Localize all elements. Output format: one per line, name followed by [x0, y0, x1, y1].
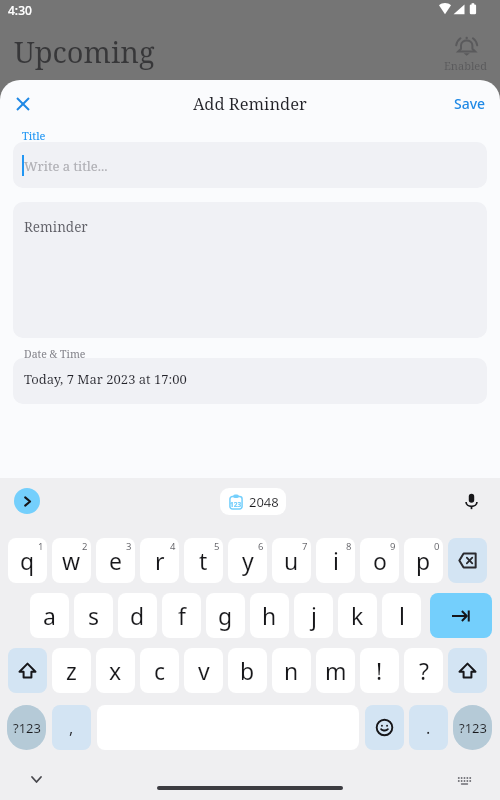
- button[interactable]: b: [228, 648, 267, 693]
- button[interactable]: Enter: [430, 593, 492, 638]
- staticText: i: [333, 545, 339, 576]
- staticText: h: [262, 600, 277, 631]
- button[interactable]: k: [338, 593, 377, 638]
- button[interactable]: Close: [5, 86, 41, 122]
- staticText: Add Reminder: [193, 92, 307, 114]
- staticText: p: [416, 545, 431, 576]
- button[interactable]: i: [316, 538, 355, 583]
- button[interactable]: p: [404, 538, 443, 583]
- button[interactable]: n: [272, 648, 311, 693]
- staticText: Reminder: [24, 218, 88, 236]
- staticText: Save: [454, 94, 486, 113]
- button[interactable]: Today, 7 Mar 2023 at 17:00: [13, 358, 487, 404]
- staticText: ,: [69, 717, 74, 739]
- button[interactable]: l: [382, 593, 421, 638]
- button[interactable]: a: [30, 593, 69, 638]
- staticText: 2: [82, 540, 88, 553]
- button[interactable]: e: [96, 538, 135, 583]
- staticText: !: [376, 655, 383, 686]
- staticText: Upcoming: [14, 32, 155, 71]
- button[interactable]: o: [360, 538, 399, 583]
- button[interactable]: ?: [404, 648, 443, 693]
- button[interactable]: ?123: [453, 705, 492, 750]
- button[interactable]: q: [8, 538, 47, 583]
- button[interactable]: s: [74, 593, 113, 638]
- staticText: ?: [419, 655, 429, 686]
- staticText: 5: [214, 540, 220, 553]
- staticText: x: [109, 655, 122, 686]
- button[interactable]: Hide keyboard: [24, 767, 48, 791]
- button[interactable]: .: [409, 705, 448, 750]
- button[interactable]: Backspace: [448, 538, 487, 583]
- staticText: 4: [170, 540, 176, 553]
- staticText: 6: [258, 540, 264, 553]
- staticText: q: [20, 545, 35, 576]
- staticText: 8: [346, 540, 352, 553]
- staticText: Write a title...: [24, 157, 108, 175]
- staticText: z: [66, 655, 77, 686]
- staticText: c: [154, 655, 166, 686]
- staticText: 9: [390, 540, 396, 553]
- button[interactable]: Emoji: [365, 705, 404, 750]
- staticText: j: [311, 600, 317, 631]
- button[interactable]: Shift: [448, 648, 487, 693]
- button[interactable]: j: [294, 593, 333, 638]
- staticText: 1: [38, 540, 44, 553]
- button[interactable]: Write a title...: [13, 142, 487, 188]
- button[interactable]: Shift: [8, 648, 47, 693]
- staticText: Enabled: [444, 58, 487, 73]
- button[interactable]: ,: [52, 705, 91, 750]
- staticText: g: [218, 600, 233, 631]
- staticText: t: [199, 545, 208, 576]
- button[interactable]: 123: [220, 488, 286, 515]
- staticText: d: [130, 600, 145, 631]
- button[interactable]: g: [206, 593, 245, 638]
- button[interactable]: c: [140, 648, 179, 693]
- staticText: n: [284, 655, 299, 686]
- staticText: u: [284, 545, 299, 576]
- button[interactable]: v: [184, 648, 223, 693]
- button[interactable]: !: [360, 648, 399, 693]
- button[interactable]: w: [52, 538, 91, 583]
- staticText: b: [240, 655, 255, 686]
- button[interactable]: h: [250, 593, 289, 638]
- button[interactable]: r: [140, 538, 179, 583]
- staticText: .: [426, 717, 431, 739]
- staticText: 123: [230, 500, 242, 509]
- staticText: Title: [22, 128, 46, 143]
- button[interactable]: Voice input: [458, 488, 484, 514]
- staticText: w: [62, 545, 81, 576]
- staticText: f: [178, 600, 186, 631]
- staticText: 0: [434, 540, 440, 553]
- button[interactable]: Expand toolbar: [14, 488, 40, 514]
- button[interactable]: Reminder: [13, 202, 487, 338]
- staticText: 3: [126, 540, 132, 553]
- staticText: Today, 7 Mar 2023 at 17:00: [24, 370, 187, 388]
- staticText: m: [325, 655, 347, 686]
- staticText: 4:30: [8, 2, 32, 18]
- button[interactable]: ?123: [7, 705, 46, 750]
- button[interactable]: u: [272, 538, 311, 583]
- staticText: y: [242, 545, 254, 576]
- staticText: k: [351, 600, 364, 631]
- staticText: a: [43, 600, 56, 631]
- button[interactable]: Change keyboard: [452, 769, 476, 793]
- staticText: v: [198, 655, 210, 686]
- button[interactable]: z: [52, 648, 91, 693]
- staticText: r: [155, 545, 165, 576]
- button[interactable]: d: [118, 593, 157, 638]
- button[interactable]: y: [228, 538, 267, 583]
- staticText: 7: [302, 540, 308, 553]
- button[interactable]: Save: [440, 86, 500, 121]
- staticText: Date & Time: [24, 347, 86, 361]
- button[interactable]: t: [184, 538, 223, 583]
- button[interactable]: m: [316, 648, 355, 693]
- button[interactable]: x: [96, 648, 135, 693]
- staticText: ?123: [13, 719, 41, 737]
- staticText: ?123: [459, 719, 487, 737]
- staticText: e: [109, 545, 122, 576]
- staticText: o: [373, 545, 387, 576]
- button[interactable]: f: [162, 593, 201, 638]
- staticText: l: [399, 600, 405, 631]
